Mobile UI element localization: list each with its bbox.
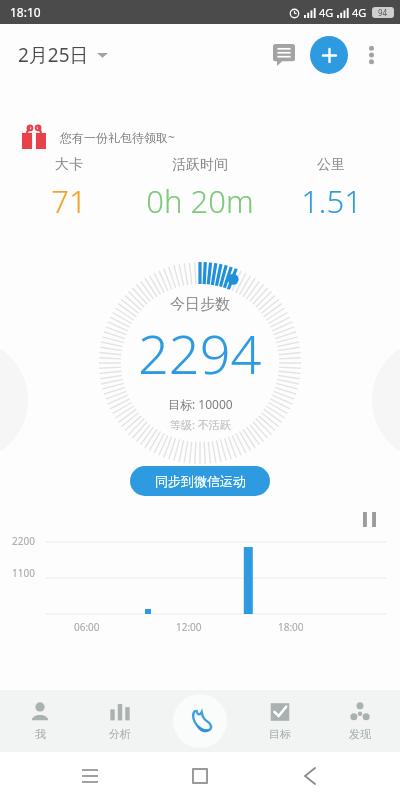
button[interactable]: Steps xyxy=(160,690,240,752)
staticText: 大卡 xyxy=(55,156,83,174)
staticText: 我 xyxy=(35,727,46,741)
staticText: 71 xyxy=(51,180,87,222)
staticText: 发现 xyxy=(349,727,371,741)
staticText: 分析 xyxy=(109,727,131,741)
button[interactable]: Back xyxy=(290,756,330,796)
button[interactable]: Home xyxy=(180,756,220,796)
button[interactable]: 分析 xyxy=(80,690,160,752)
button[interactable]: 大卡 xyxy=(8,156,130,222)
staticText: 4G xyxy=(352,5,367,20)
staticText: 94 xyxy=(378,7,388,18)
staticText: 18:10 xyxy=(10,4,41,20)
staticText: 2200 xyxy=(12,534,35,548)
button[interactable]: 2月25日 xyxy=(18,42,108,68)
staticText: 18:00 xyxy=(278,620,304,634)
button[interactable]: 我 xyxy=(0,690,80,752)
staticText: 今日步数 xyxy=(170,295,230,314)
staticText: 目标: 10000 xyxy=(168,396,233,412)
button[interactable]: 目标 xyxy=(240,690,320,752)
staticText: 公里 xyxy=(317,156,345,174)
button[interactable]: More options xyxy=(352,36,390,74)
button[interactable]: 活跃时间 xyxy=(130,156,270,222)
staticText: 1.51 xyxy=(301,180,362,222)
button[interactable]: 发现 xyxy=(320,690,400,752)
button[interactable]: 您有一份礼包待领取~ xyxy=(22,122,400,152)
staticText: 您有一份礼包待领取~ xyxy=(60,129,175,145)
staticText: 12:00 xyxy=(176,620,202,634)
staticText: 活跃时间 xyxy=(172,156,228,174)
staticText: 2月25日 xyxy=(18,42,89,68)
staticText: 等级: 不活跃 xyxy=(170,417,231,432)
button[interactable]: Add xyxy=(306,32,352,78)
staticText: 4G xyxy=(319,5,334,20)
staticText: 06:00 xyxy=(74,620,100,634)
button[interactable]: Messages xyxy=(262,33,306,77)
staticText: 0h 20m xyxy=(146,180,254,222)
button[interactable]: 公里 xyxy=(270,156,392,222)
button[interactable]: Recents xyxy=(70,756,110,796)
staticText: 同步到微信运动 xyxy=(155,473,246,489)
button[interactable]: 同步到微信运动 xyxy=(130,466,270,496)
staticText: 目标 xyxy=(269,727,291,741)
staticText: 2294 xyxy=(138,316,262,390)
staticText: 1100 xyxy=(12,566,35,580)
button[interactable]: Pause xyxy=(356,508,382,530)
